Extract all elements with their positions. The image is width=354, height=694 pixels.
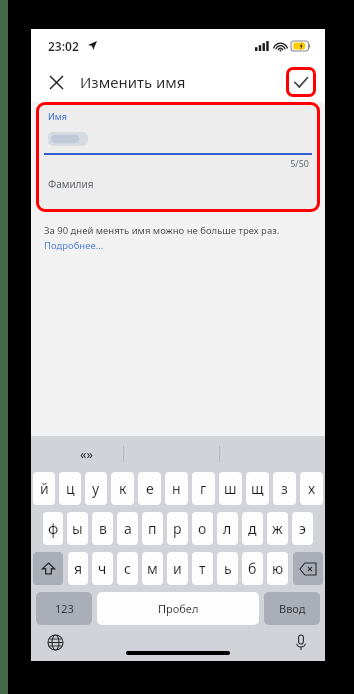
button[interactable]: г (192, 472, 215, 505)
button[interactable]: Удалить (293, 552, 323, 585)
staticText: г (200, 479, 207, 498)
button[interactable]: Подробнее... (44, 239, 104, 252)
staticText: ж (272, 519, 283, 538)
staticText: л (223, 519, 232, 538)
staticText: с (124, 559, 131, 578)
button[interactable]: х (300, 472, 323, 505)
button[interactable]: ч (92, 552, 113, 585)
button[interactable]: м (142, 552, 163, 585)
staticText: х (308, 479, 316, 498)
staticText: з (281, 479, 288, 498)
staticText: ц (66, 479, 75, 498)
staticText: н (172, 479, 181, 498)
staticText: а (124, 519, 132, 538)
button[interactable]: Ввод (264, 592, 320, 625)
button[interactable]: Пробел (97, 592, 259, 625)
staticText: й (40, 479, 49, 498)
button[interactable]: ф (43, 512, 63, 545)
button[interactable]: Сохранить (286, 67, 316, 97)
staticText: ш (224, 479, 237, 498)
button[interactable]: б (242, 552, 263, 585)
staticText: «» (80, 446, 93, 462)
button[interactable]: э (292, 512, 313, 545)
staticText: Пробел (158, 601, 199, 616)
button[interactable]: Shift (33, 552, 63, 585)
staticText: б (248, 559, 257, 578)
staticText: Подробнее... (44, 239, 104, 252)
button[interactable]: Голосовой ввод (290, 631, 312, 653)
button[interactable]: к (111, 472, 134, 505)
staticText: я (74, 559, 83, 578)
staticText: 5/50 (39, 157, 309, 169)
button[interactable]: т (192, 552, 213, 585)
button[interactable]: ж (267, 512, 288, 545)
button[interactable]: у (85, 472, 107, 505)
button[interactable]: л (217, 512, 238, 545)
button[interactable]: с (117, 552, 138, 585)
staticText: ь (224, 559, 232, 578)
button[interactable]: Фамилия (39, 175, 317, 209)
button[interactable]: о (192, 512, 213, 545)
button[interactable]: щ (246, 472, 269, 505)
staticText: д (248, 519, 257, 538)
staticText: Фамилия (48, 177, 94, 191)
staticText: За 90 дней менять имя можно не больше тр… (44, 224, 280, 237)
staticText: к (119, 479, 127, 498)
staticText: в (99, 519, 107, 538)
button[interactable]: Сменить язык (44, 631, 66, 653)
staticText: п (148, 519, 157, 538)
button[interactable]: 123 (36, 592, 92, 625)
staticText: э (299, 519, 306, 538)
staticText: 23:02 (48, 38, 79, 54)
staticText: 123 (55, 601, 74, 616)
staticText: ф (48, 519, 59, 538)
button[interactable]: ы (67, 512, 88, 545)
staticText: м (147, 559, 158, 578)
button[interactable]: я (68, 552, 88, 585)
staticText: р (173, 519, 182, 538)
button[interactable]: ь (217, 552, 238, 585)
button[interactable]: н (165, 472, 188, 505)
staticText: у (92, 479, 100, 498)
button[interactable]: Имя (39, 105, 317, 155)
staticText: е (146, 479, 154, 498)
button[interactable]: ш (219, 472, 242, 505)
staticText: и (173, 559, 182, 578)
staticText: щ (251, 479, 264, 498)
button[interactable]: е (138, 472, 161, 505)
staticText: о (198, 519, 207, 538)
button[interactable]: а (117, 512, 138, 545)
staticText: ю (272, 559, 284, 578)
staticText: Имя (48, 110, 67, 122)
button[interactable]: р (167, 512, 188, 545)
button[interactable]: ю (267, 552, 288, 585)
button[interactable]: и (167, 552, 188, 585)
staticText: Ввод (279, 601, 306, 616)
button[interactable]: Закрыть (40, 66, 72, 98)
staticText: ч (98, 559, 107, 578)
staticText: ы (72, 519, 83, 538)
staticText: т (199, 559, 206, 578)
button[interactable]: п (142, 512, 163, 545)
button[interactable]: й (33, 472, 55, 505)
staticText: Изменить имя (80, 72, 186, 92)
button[interactable]: ц (59, 472, 81, 505)
button[interactable]: в (92, 512, 113, 545)
button[interactable]: д (242, 512, 263, 545)
button[interactable]: з (273, 472, 296, 505)
